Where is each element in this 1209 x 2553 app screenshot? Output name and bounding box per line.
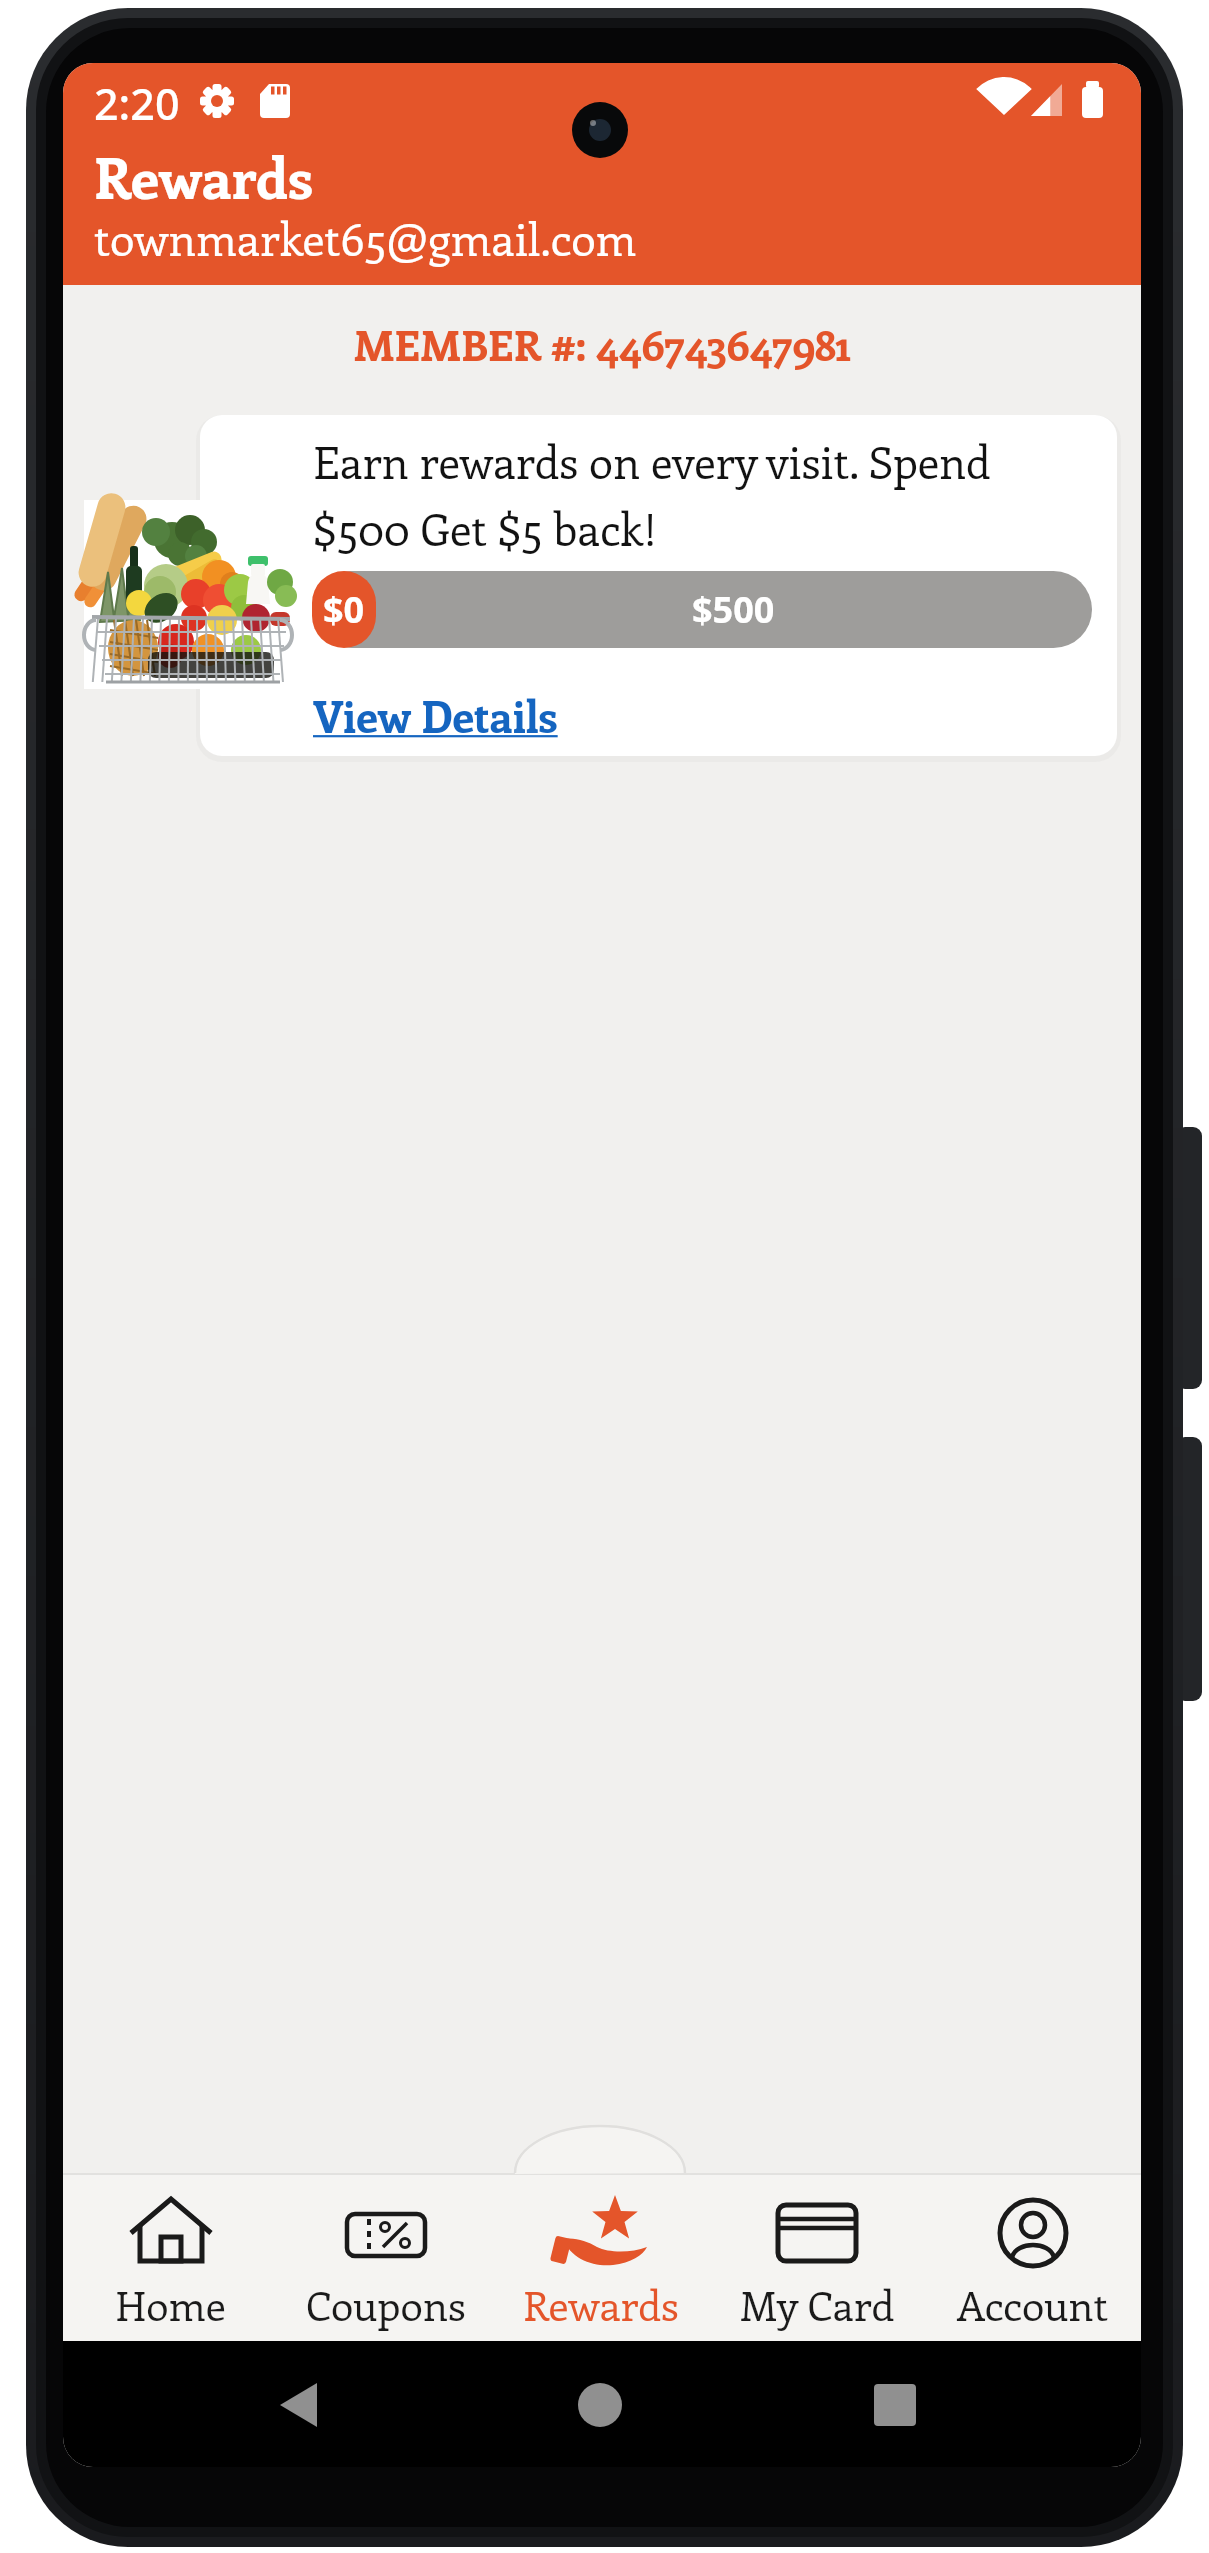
staticText: 2:20 <box>94 74 180 133</box>
staticText: MEMBER #: 446743647981 <box>63 316 1141 372</box>
staticText: Earn rewards on every visit. Spend $500 … <box>313 432 991 557</box>
button[interactable]: Coupons <box>278 2173 493 2341</box>
staticText: $0 <box>323 585 365 634</box>
button[interactable]: Earn rewards on every visit. Spend $500 … <box>200 415 1117 756</box>
staticText: Rewards <box>94 138 313 214</box>
staticText: Home <box>116 2277 226 2332</box>
button[interactable]: Rewards <box>493 2173 709 2341</box>
staticText: My Card <box>740 2277 895 2332</box>
button[interactable]: My Card <box>709 2173 925 2341</box>
staticText: $500 <box>692 585 775 634</box>
button[interactable]: Account <box>925 2173 1141 2341</box>
button[interactable]: View Details <box>313 686 558 745</box>
staticText: Rewards <box>523 2277 679 2332</box>
staticText: Account <box>957 2277 1109 2332</box>
staticText: Coupons <box>306 2277 466 2332</box>
button[interactable]: Home <box>63 2173 278 2341</box>
staticText: townmarket65@gmail.com <box>94 208 637 268</box>
